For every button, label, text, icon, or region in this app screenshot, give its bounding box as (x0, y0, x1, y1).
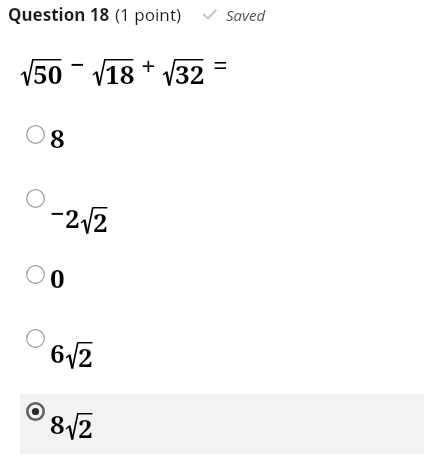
button[interactable]: 8 (20, 394, 424, 454)
staticText: 2 (78, 410, 93, 440)
button[interactable]: 0 (0, 254, 424, 324)
staticText: 2 (78, 339, 93, 369)
staticText: Question 18 (8, 3, 110, 26)
staticText: 8 (50, 120, 65, 155)
button[interactable]: 8 (0, 114, 424, 184)
button[interactable]: − (0, 184, 424, 254)
staticText: 50 (33, 56, 63, 86)
staticText: 2 (65, 200, 80, 235)
staticText: 18 (105, 56, 135, 86)
staticText: − (50, 195, 65, 230)
button[interactable]: 6 (0, 324, 424, 394)
staticText: 6 (50, 335, 65, 370)
staticText: 2 (93, 204, 108, 234)
staticText: + (141, 48, 156, 83)
staticText: Saved (226, 5, 266, 25)
other: Saved (202, 7, 217, 22)
staticText: 32 (175, 56, 205, 86)
staticText: 0 (50, 260, 65, 295)
staticText: = (213, 47, 228, 82)
staticText: 8 (50, 406, 65, 441)
staticText: − (70, 46, 85, 81)
staticText: (1 point) (115, 3, 182, 26)
